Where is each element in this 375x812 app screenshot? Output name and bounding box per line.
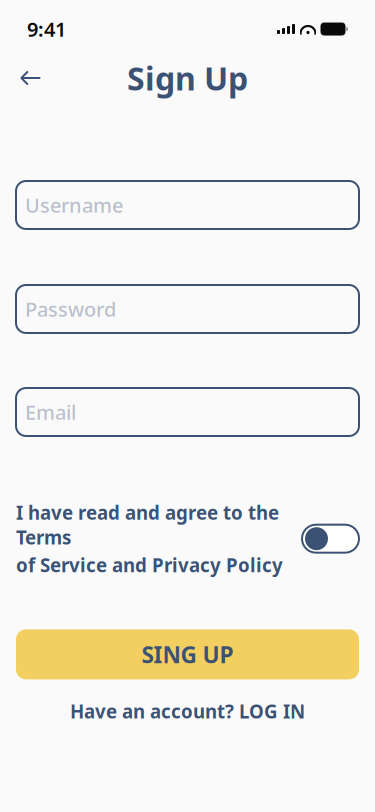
staticText: I have read and agree to the Terms (16, 500, 279, 550)
staticText: Have an account? LOG IN (70, 699, 305, 724)
staticText: Password (25, 296, 116, 322)
button[interactable]: SING UP (16, 629, 359, 679)
staticText: of Service and Privacy Policy (16, 553, 283, 577)
staticText: Sign Up (127, 57, 248, 99)
staticText: SING UP (141, 639, 233, 669)
staticText: Email (25, 399, 76, 425)
button[interactable]: Back (9, 56, 53, 100)
button[interactable]: Have an account? LOG IN (16, 699, 359, 723)
button[interactable]: Agree to terms (302, 525, 359, 553)
staticText: Username (25, 192, 123, 218)
staticText: 9:41 (27, 16, 66, 42)
